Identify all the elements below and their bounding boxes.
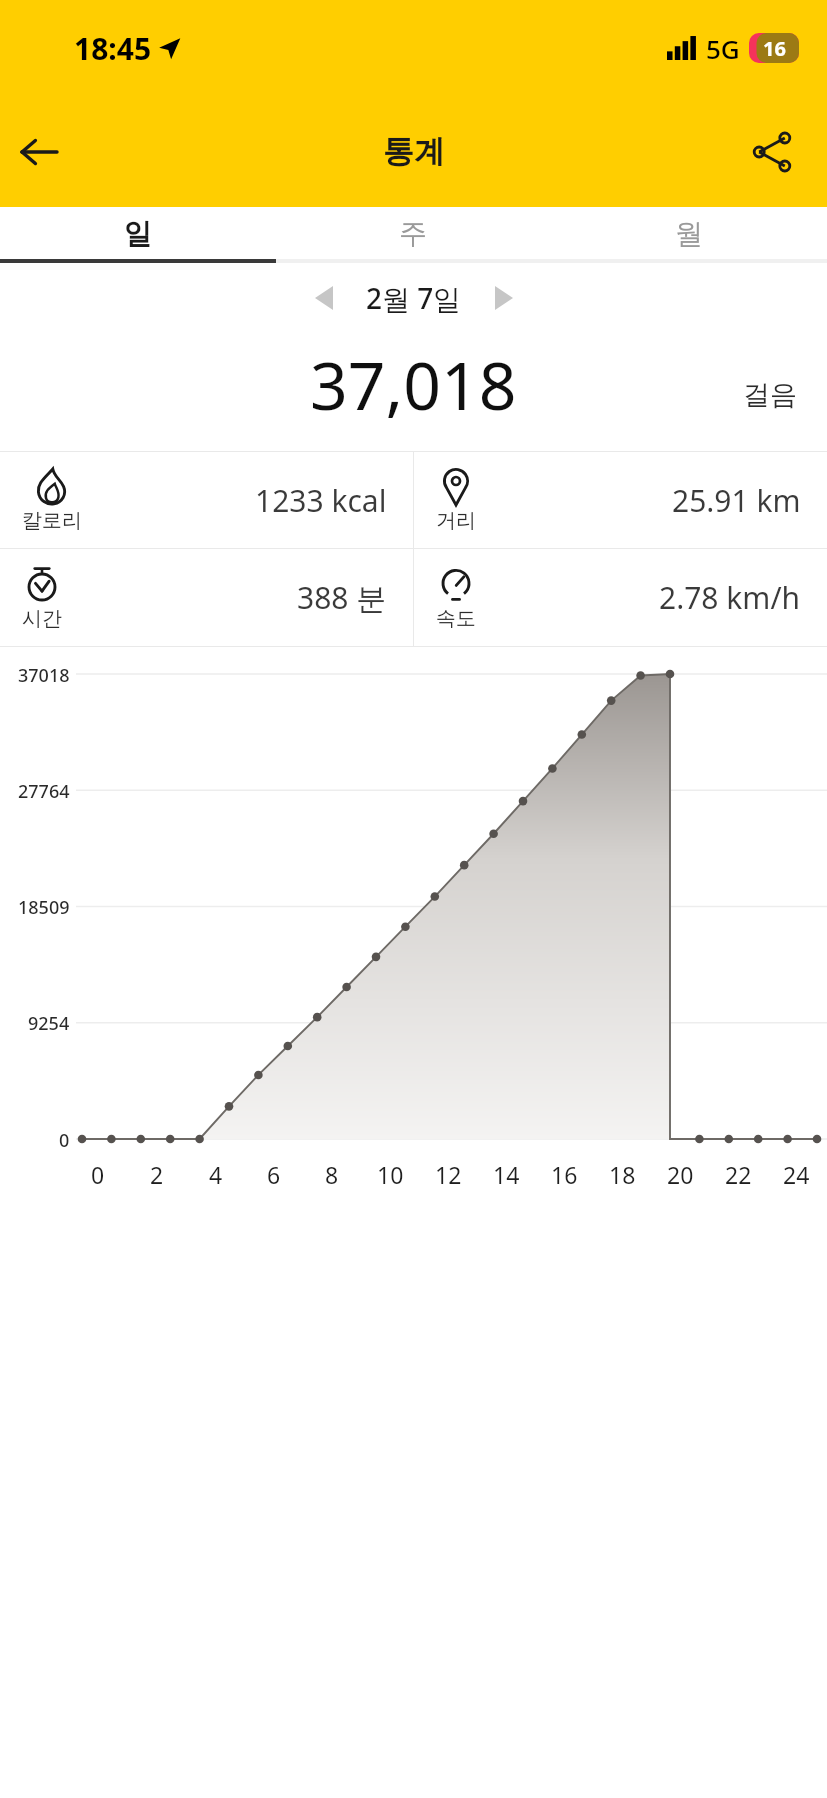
staticText: 16 <box>763 35 786 62</box>
staticText: 27764 <box>18 779 70 804</box>
staticText: 14 <box>493 1159 520 1190</box>
staticText: 20 <box>667 1159 694 1190</box>
staticText: 18509 <box>18 895 70 920</box>
staticText: 388 분 <box>297 577 387 618</box>
staticText: 25.91 km <box>672 480 801 521</box>
button[interactable]: 거리 <box>414 452 827 548</box>
button[interactable]: 주 <box>275 207 551 259</box>
staticText: 0 <box>91 1159 105 1190</box>
staticText: 주 <box>399 216 427 251</box>
staticText: 6 <box>267 1159 281 1190</box>
staticText: 속도 <box>436 606 476 631</box>
staticText: 월 <box>675 216 703 251</box>
staticText: 칼로리 <box>22 508 82 533</box>
staticText: 12 <box>435 1159 462 1190</box>
staticText: 24 <box>783 1159 810 1190</box>
staticText: 2.78 km/h <box>659 577 801 618</box>
staticText: 통계 <box>383 132 445 171</box>
staticText: 2월 7일 <box>366 279 462 317</box>
button[interactable]: Previous day <box>298 272 350 324</box>
staticText: 10 <box>377 1159 404 1190</box>
button[interactable]: 칼로리 <box>0 452 413 548</box>
staticText: 37,018 <box>310 339 517 429</box>
button[interactable]: 속도 <box>414 549 827 646</box>
staticText: 18 <box>609 1159 636 1190</box>
staticText: 시간 <box>22 606 62 631</box>
staticText: 일 <box>124 216 152 251</box>
button[interactable]: 시간 <box>0 549 413 646</box>
staticText: 2 <box>150 1159 164 1190</box>
button[interactable]: 일 <box>0 207 275 259</box>
button[interactable]: 월 <box>551 207 827 259</box>
staticText: 0 <box>59 1128 70 1153</box>
staticText: 걸음 <box>743 378 797 412</box>
staticText: 거리 <box>436 508 476 533</box>
staticText: 22 <box>725 1159 752 1190</box>
staticText: 8 <box>325 1159 339 1190</box>
staticText: 9254 <box>28 1011 70 1036</box>
staticText: 1233 kcal <box>255 480 387 521</box>
staticText: 4 <box>209 1159 223 1190</box>
staticText: 16 <box>551 1159 578 1190</box>
staticText: 18:45 <box>74 28 152 69</box>
button[interactable]: Share <box>739 119 805 185</box>
staticText: 5G <box>706 31 740 66</box>
button[interactable]: Back <box>6 119 72 185</box>
button[interactable]: Next day <box>478 272 530 324</box>
staticText: 37018 <box>18 663 70 688</box>
